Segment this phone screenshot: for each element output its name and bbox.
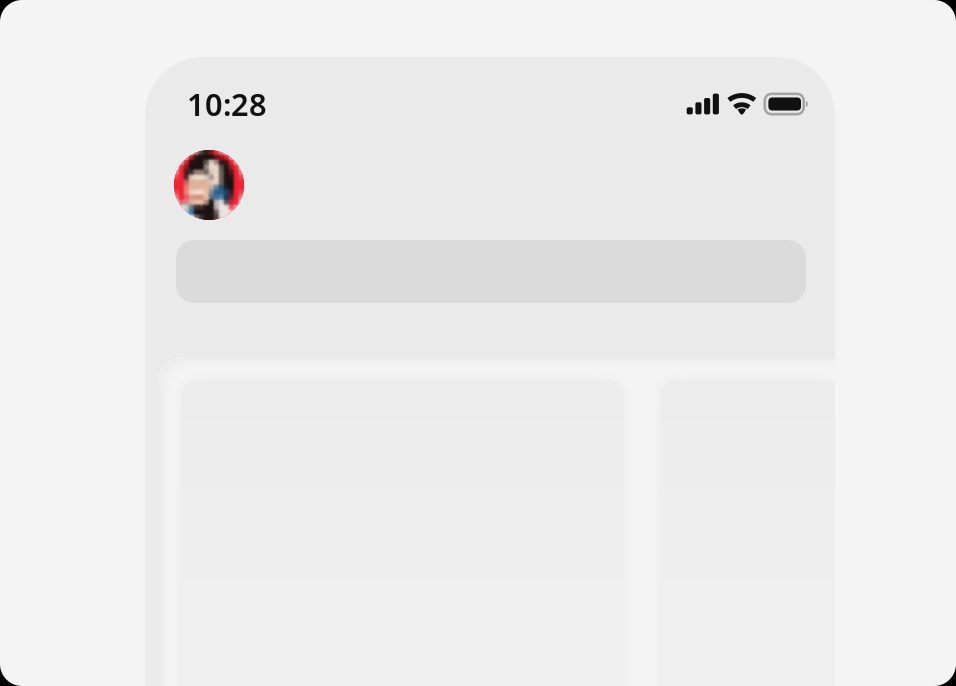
staticText: 10:28	[187, 84, 267, 124]
button[interactable]: Profile	[174, 150, 244, 220]
